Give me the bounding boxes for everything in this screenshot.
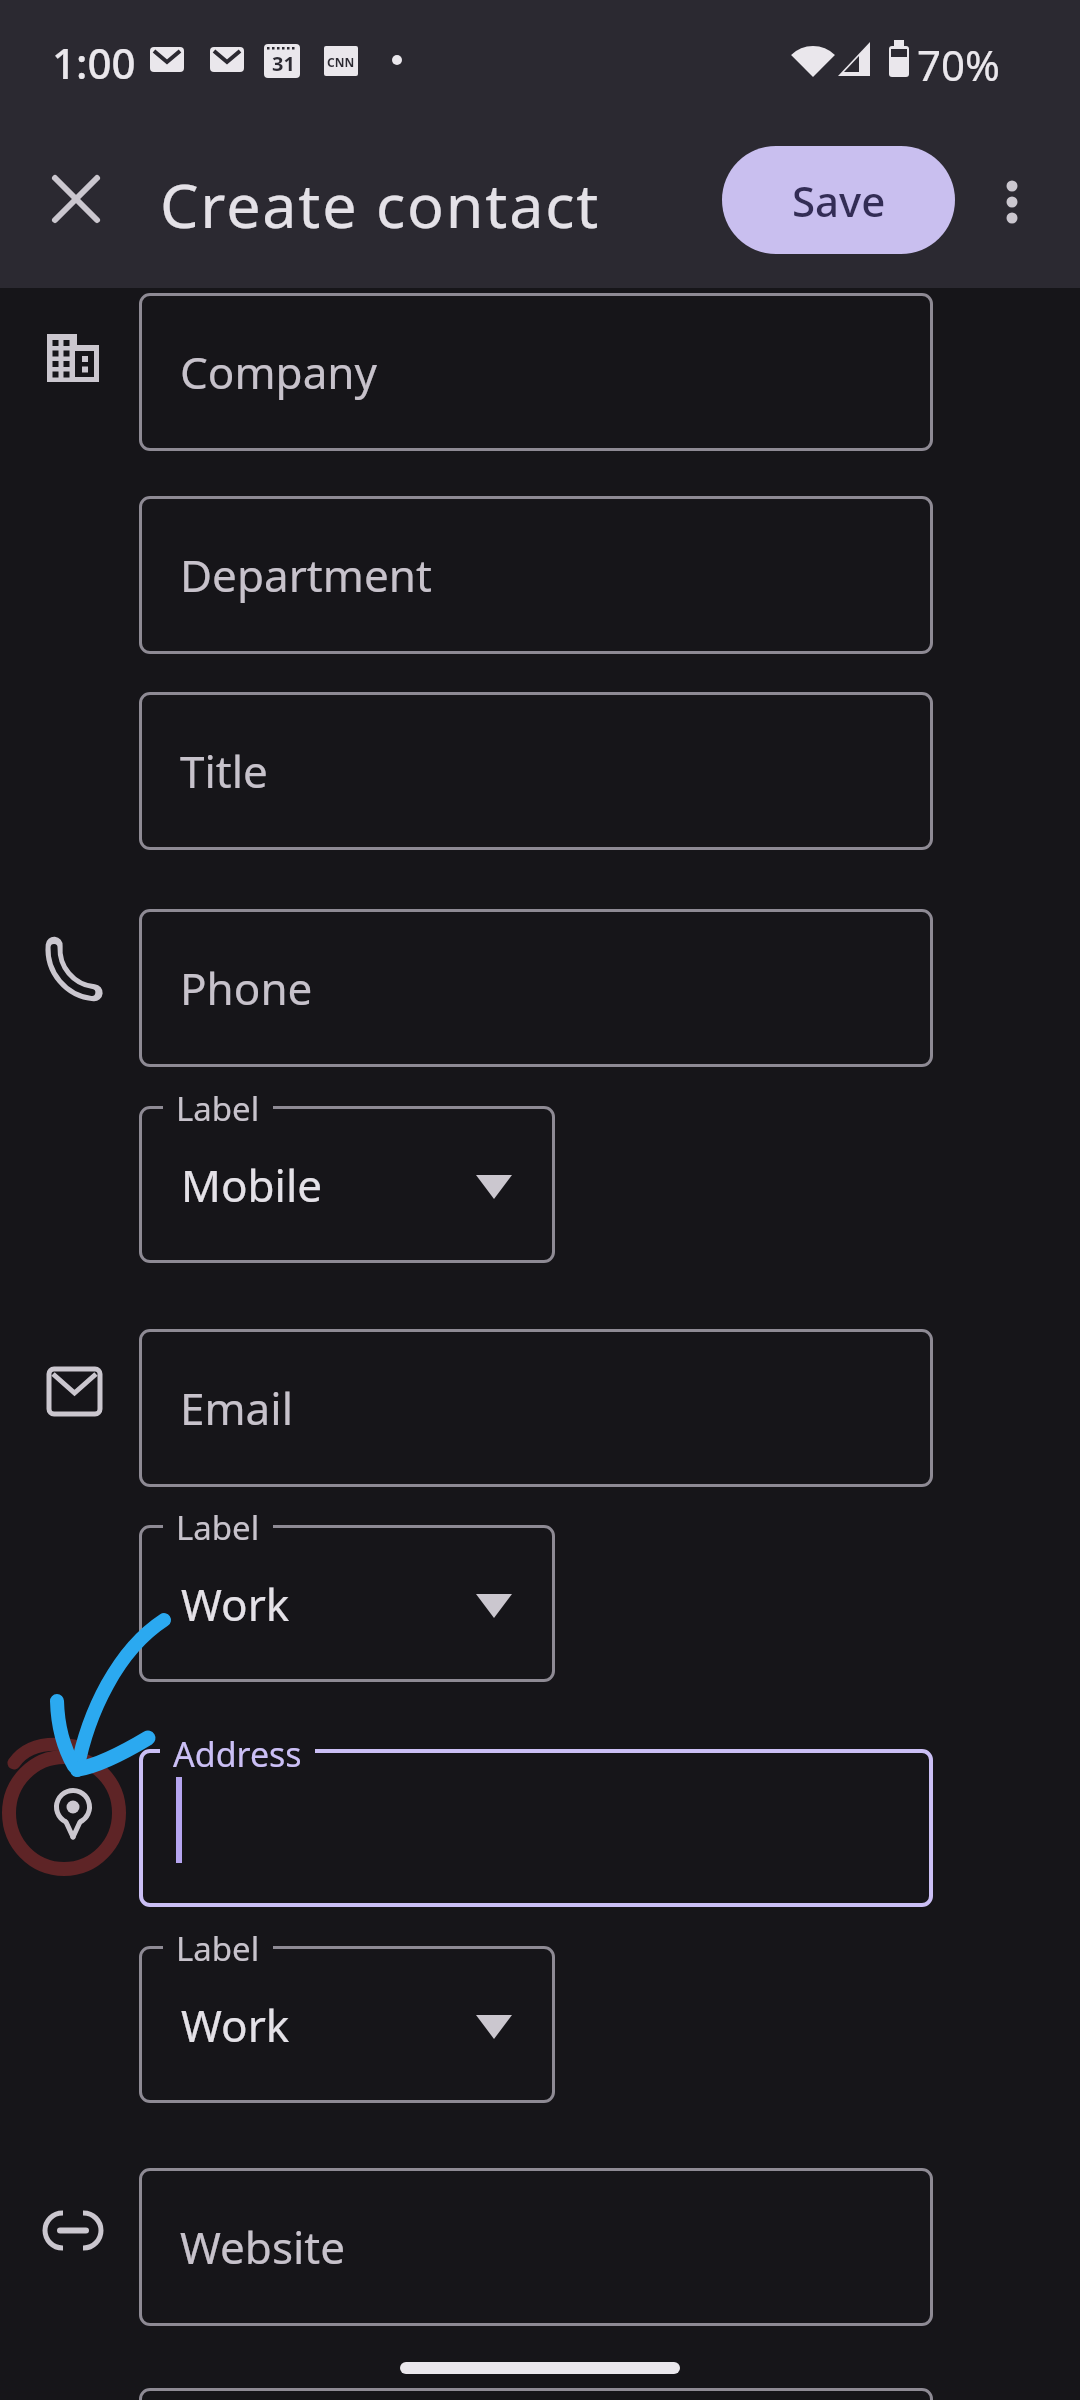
staticText: Work [181, 1574, 290, 1634]
staticText: Label [176, 1926, 260, 1971]
button[interactable]: Phone [139, 909, 933, 1067]
staticText: Label [176, 1086, 260, 1131]
button[interactable]: Save [722, 146, 955, 254]
button[interactable]: Work [139, 1946, 555, 2103]
staticText: Work [181, 1995, 290, 2055]
button[interactable]: Mobile [139, 1106, 555, 1263]
button[interactable] [139, 2388, 933, 2400]
button[interactable] [139, 1749, 933, 1907]
button[interactable] [982, 170, 1042, 230]
staticText: CNN [327, 54, 355, 70]
staticText: Label [176, 1505, 260, 1550]
staticText: Save [792, 172, 886, 229]
button[interactable]: Title [139, 692, 933, 850]
staticText: Title [180, 741, 268, 801]
staticText: Department [180, 545, 432, 605]
staticText: Create contact [160, 163, 601, 246]
button[interactable]: Company [139, 293, 933, 451]
button[interactable] [44, 167, 108, 231]
staticText: 70% [917, 36, 1000, 93]
button[interactable]: Work [139, 1525, 555, 1682]
button[interactable]: Website [139, 2168, 933, 2326]
button[interactable]: Department [139, 496, 933, 654]
staticText: Website [180, 2217, 346, 2277]
staticText: 31 [272, 50, 295, 77]
staticText: Phone [180, 958, 313, 1018]
button[interactable]: Email [139, 1329, 933, 1487]
staticText: Email [180, 1378, 293, 1438]
staticText: Company [180, 342, 377, 402]
staticText: 1:00 [52, 34, 136, 91]
staticText: Address [173, 1731, 302, 1777]
staticText: Mobile [181, 1155, 323, 1215]
